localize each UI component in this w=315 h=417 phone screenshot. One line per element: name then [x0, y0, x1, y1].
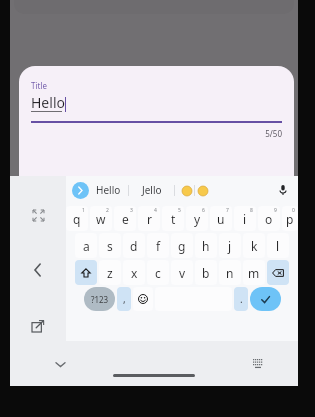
staticText: c: [155, 265, 161, 281]
staticText: 4: [154, 207, 157, 214]
staticText: Hello: [96, 183, 121, 197]
staticText: 5: [178, 207, 181, 214]
button[interactable]: Voice input: [274, 181, 292, 199]
staticText: h: [202, 238, 210, 254]
staticText: d: [130, 238, 138, 254]
staticText: ?123: [91, 294, 109, 305]
button[interactable]: Fullscreen: [26, 203, 50, 227]
staticText: p: [286, 211, 294, 227]
button[interactable]: Smiley emoji: [195, 183, 210, 198]
button[interactable]: Done: [250, 287, 281, 311]
staticText: 9: [274, 207, 277, 214]
button[interactable]: x: [123, 260, 145, 285]
button[interactable]: y: [186, 206, 208, 231]
staticText: m: [248, 265, 260, 281]
button[interactable]: .: [234, 287, 248, 311]
staticText: y: [194, 211, 201, 227]
staticText: j: [228, 238, 232, 254]
staticText: e: [122, 211, 129, 227]
button[interactable]: w: [90, 206, 112, 231]
staticText: Title: [31, 80, 47, 91]
staticText: 7: [226, 207, 229, 214]
staticText: 8: [250, 207, 253, 214]
button[interactable]: i: [234, 206, 256, 231]
button[interactable]: b: [195, 260, 217, 285]
staticText: w: [96, 211, 106, 227]
button[interactable]: u: [210, 206, 232, 231]
staticText: 5/50: [31, 128, 282, 139]
button[interactable]: ,: [117, 287, 131, 311]
button[interactable]: g: [171, 233, 193, 258]
staticText: q: [73, 211, 81, 227]
button[interactable]: c: [147, 260, 169, 285]
button[interactable]: o: [258, 206, 280, 231]
staticText: .: [240, 292, 243, 306]
button[interactable]: m: [243, 260, 265, 285]
button[interactable]: h: [195, 233, 217, 258]
staticText: l: [276, 238, 280, 254]
button[interactable]: z: [99, 260, 121, 285]
button[interactable]: Emoji: [133, 287, 153, 311]
button[interactable]: j: [219, 233, 241, 258]
button[interactable]: Shift: [75, 260, 97, 285]
button[interactable]: q: [66, 206, 88, 231]
staticText: s: [107, 238, 113, 254]
button[interactable]: Wave emoji: [179, 183, 194, 198]
button[interactable]: s: [99, 233, 121, 258]
staticText: z: [107, 265, 113, 281]
button[interactable]: k: [243, 233, 265, 258]
staticText: r: [147, 211, 152, 227]
staticText: b: [202, 265, 210, 281]
button[interactable]: f: [147, 233, 169, 258]
button[interactable]: e: [114, 206, 136, 231]
button[interactable]: d: [123, 233, 145, 258]
button[interactable]: Keyboard layout: [248, 354, 268, 374]
staticText: o: [265, 211, 273, 227]
button[interactable]: n: [219, 260, 241, 285]
button[interactable]: v: [171, 260, 193, 285]
staticText: 3: [130, 207, 133, 214]
button[interactable]: r: [138, 206, 160, 231]
staticText: Jello: [142, 183, 162, 197]
staticText: u: [217, 211, 225, 227]
staticText: t: [171, 211, 176, 227]
button[interactable]: t: [162, 206, 184, 231]
staticText: n: [226, 265, 234, 281]
staticText: x: [131, 265, 138, 281]
staticText: v: [179, 265, 186, 281]
staticText: 2: [106, 207, 109, 214]
button[interactable]: Back: [25, 257, 51, 283]
staticText: 6: [202, 207, 205, 214]
button[interactable]: Hello: [89, 183, 128, 197]
button[interactable]: More suggestions: [72, 182, 89, 199]
button[interactable]: ?123: [84, 287, 115, 311]
staticText: g: [178, 238, 186, 254]
button[interactable]: Hide keyboard: [50, 354, 70, 374]
button[interactable]: Open in new window: [25, 313, 51, 339]
button[interactable]: a: [75, 233, 97, 258]
staticText: 0: [292, 207, 295, 214]
button[interactable]: l: [267, 233, 289, 258]
button[interactable]: Backspace: [267, 260, 289, 285]
staticText: k: [251, 238, 258, 254]
staticText: 1: [82, 207, 85, 214]
button[interactable]: Jello: [129, 183, 174, 197]
staticText: ,: [123, 292, 126, 306]
button[interactable]: p: [282, 206, 298, 231]
staticText: Hello: [31, 93, 65, 112]
staticText: i: [243, 211, 247, 227]
staticText: a: [83, 238, 90, 254]
staticText: f: [156, 238, 161, 254]
